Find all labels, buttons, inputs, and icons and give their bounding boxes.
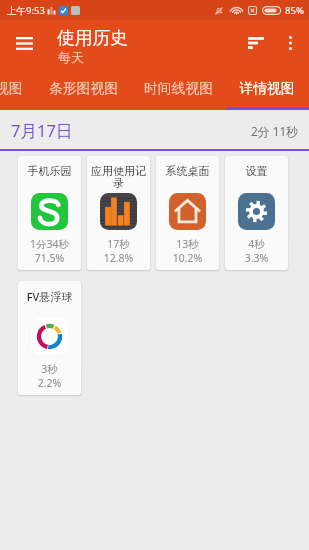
staticText: FV悬浮球 <box>20 289 79 304</box>
staticText: 2.2% <box>20 376 79 390</box>
button[interactable]: 详情视图 <box>226 66 308 110</box>
button[interactable]: 系统桌面 <box>156 156 219 270</box>
staticText: 2分 11秒 <box>251 123 298 139</box>
staticText: 4秒 <box>227 237 286 251</box>
staticText: 12.8% <box>89 251 148 265</box>
staticText: 7月17日 <box>11 119 73 142</box>
staticText: 饼图视图 <box>0 80 23 97</box>
staticText: 85% <box>285 4 304 17</box>
staticText: 使用历史 <box>57 27 128 49</box>
staticText: 3.3% <box>227 251 286 265</box>
staticText: 71.5% <box>20 251 79 265</box>
staticText: 10.2% <box>158 251 217 265</box>
staticText: 17秒 <box>89 237 148 251</box>
staticText: 条形图视图 <box>49 80 118 97</box>
button[interactable]: More options <box>276 29 304 57</box>
button[interactable]: 饼图视图 <box>0 66 36 110</box>
staticText: 时间线视图 <box>144 80 213 97</box>
button[interactable]: Navigation menu <box>7 26 41 60</box>
staticText: 手机乐园 <box>20 164 79 178</box>
staticText: 1分34秒 <box>20 237 79 251</box>
staticText: 详情视图 <box>239 80 295 97</box>
button[interactable]: 条形图视图 <box>36 66 131 110</box>
button[interactable]: Sort <box>241 28 271 58</box>
button[interactable]: 时间线视图 <box>131 66 226 110</box>
staticText: 上午9:53 <box>7 4 45 17</box>
staticText: 3秒 <box>20 362 79 376</box>
staticText: 应用使用记录 <box>89 164 148 191</box>
staticText: 13秒 <box>158 237 217 251</box>
staticText: 设置 <box>227 164 286 178</box>
staticText: 系统桌面 <box>158 164 217 178</box>
button[interactable]: FV悬浮球 <box>18 281 81 395</box>
button[interactable]: 设置 <box>225 156 288 270</box>
button[interactable]: 应用使用记录 <box>87 156 150 270</box>
button[interactable]: 手机乐园 <box>18 156 81 270</box>
staticText: 每天 <box>58 49 84 65</box>
